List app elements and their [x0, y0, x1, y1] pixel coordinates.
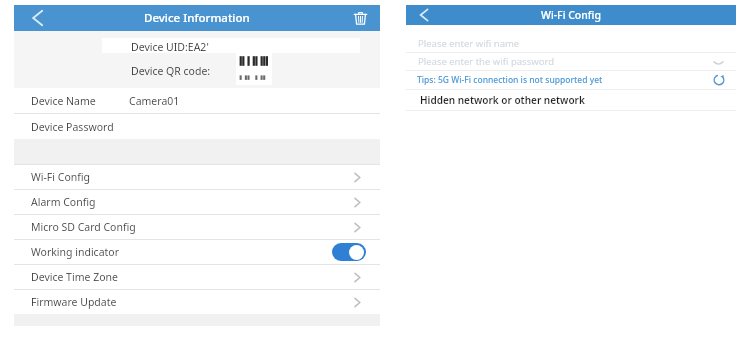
button[interactable]: Alarm Config: [14, 190, 380, 214]
staticText: Firmware Update: [31, 295, 351, 309]
button[interactable]: Please enter the wifi password: [406, 53, 736, 70]
staticText: Device QR code:: [131, 64, 211, 78]
staticText: Device Name: [31, 94, 96, 108]
button[interactable]: Micro SD Card Config: [14, 215, 380, 239]
staticText: Tips: 5G Wi-Fi connection is not support…: [417, 74, 603, 86]
staticText: Hidden network or other network: [420, 93, 585, 107]
button[interactable]: Device Name: [14, 88, 380, 113]
button[interactable]: Wi-Fi Config: [14, 165, 380, 189]
button[interactable]: Working indicator: [14, 240, 380, 264]
button[interactable]: Device Password: [14, 114, 380, 139]
staticText: Alarm Config: [31, 195, 351, 209]
staticText: Camera01: [129, 94, 180, 108]
staticText: Wi-Fi Config: [31, 170, 351, 184]
button[interactable]: Show password: [710, 54, 726, 70]
button[interactable]: [332, 243, 366, 261]
button[interactable]: Firmware Update: [14, 290, 380, 314]
button[interactable]: Hidden network or other network: [406, 90, 736, 110]
button[interactable]: Back: [410, 5, 434, 25]
button[interactable]: Device Time Zone: [14, 265, 380, 289]
staticText: Please enter the wifi password: [418, 55, 554, 68]
button[interactable]: Back: [20, 5, 50, 31]
staticText: Micro SD Card Config: [31, 220, 351, 234]
staticText: Working indicator: [31, 245, 332, 259]
button[interactable]: Delete: [348, 6, 372, 30]
staticText: Device Time Zone: [31, 270, 351, 284]
staticText: Please enter wifi name: [418, 37, 520, 50]
staticText: Wi-Fi Config: [541, 8, 601, 22]
button[interactable]: Refresh: [710, 71, 728, 89]
staticText: Device UID:EA2': [131, 40, 209, 54]
staticText: Device Information: [144, 10, 250, 26]
staticText: Device Password: [31, 120, 114, 134]
button[interactable]: Please enter wifi name: [406, 35, 736, 52]
